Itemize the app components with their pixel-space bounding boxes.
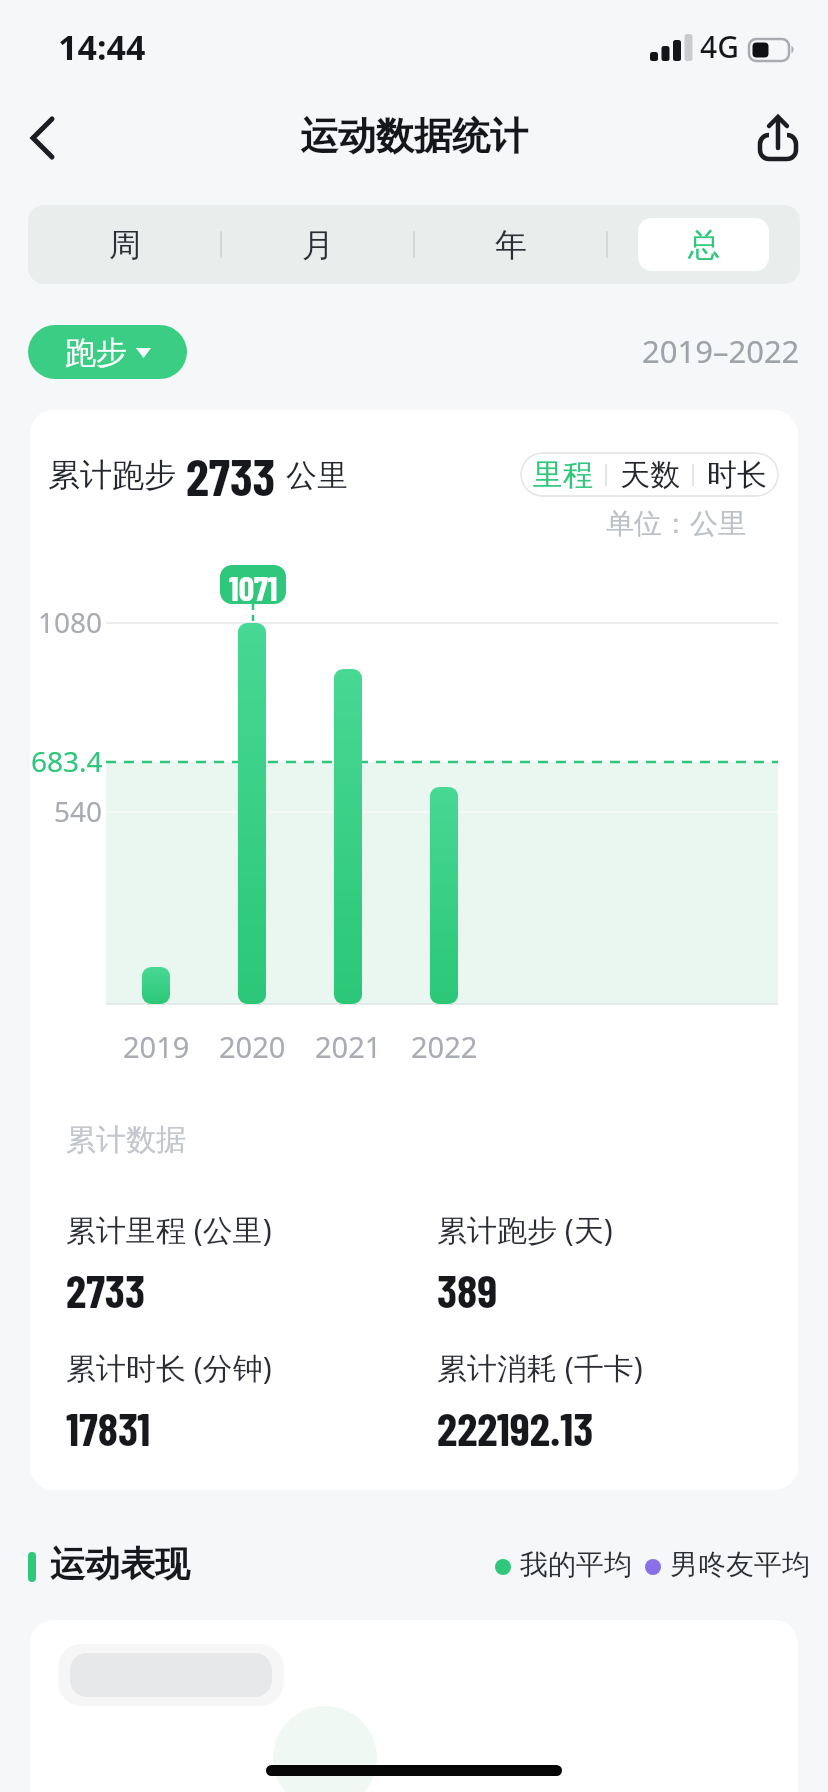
- staticText: 周: [109, 225, 141, 265]
- staticText: 2022: [411, 1027, 478, 1066]
- button[interactable]: 年: [414, 205, 607, 284]
- staticText: 总: [688, 225, 720, 265]
- staticText: 累计消耗 (千卡): [437, 1347, 643, 1388]
- staticText: 2733: [186, 444, 276, 506]
- button[interactable]: [16, 100, 80, 172]
- staticText: 单位：公里: [606, 506, 746, 541]
- button[interactable]: 里程: [520, 452, 605, 497]
- staticText: 累计里程 (公里): [66, 1209, 272, 1250]
- staticText: 389: [437, 1262, 498, 1317]
- button[interactable]: 总: [607, 205, 800, 284]
- staticText: 2733: [66, 1262, 145, 1317]
- staticText: 2021: [315, 1027, 382, 1066]
- staticText: 天数: [620, 456, 680, 494]
- staticText: 2019–2022: [642, 330, 800, 372]
- staticText: 跑步: [65, 333, 127, 372]
- staticText: 年: [495, 225, 527, 265]
- staticText: 4G: [700, 26, 739, 67]
- staticText: 2020: [219, 1027, 286, 1066]
- staticText: 月: [302, 225, 334, 265]
- staticText: 运动数据统计: [0, 112, 828, 160]
- button[interactable]: [744, 96, 816, 172]
- staticText: 14:44: [58, 24, 146, 70]
- staticText: 累计数据: [66, 1121, 186, 1159]
- staticText: 我的平均: [520, 1547, 632, 1582]
- staticText: 时长: [707, 456, 767, 494]
- staticText: 1080: [38, 603, 103, 641]
- staticText: 运动表现: [50, 1542, 190, 1586]
- staticText: 2019: [123, 1027, 190, 1066]
- staticText: 222192.13: [437, 1400, 594, 1455]
- staticText: 累计跑步: [48, 455, 176, 495]
- button[interactable]: 月: [221, 205, 414, 284]
- staticText: 17831: [66, 1400, 151, 1455]
- staticText: 683.4: [31, 742, 103, 780]
- staticText: 540: [54, 792, 103, 830]
- button[interactable]: 周: [28, 205, 221, 284]
- button[interactable]: 时长: [694, 452, 779, 497]
- button[interactable]: 天数: [607, 452, 692, 497]
- staticText: 公里: [286, 456, 348, 495]
- button[interactable]: 跑步: [28, 325, 187, 379]
- staticText: 累计时长 (分钟): [66, 1347, 272, 1388]
- staticText: 男咚友平均: [670, 1547, 810, 1582]
- staticText: 里程: [533, 456, 593, 494]
- staticText: 累计跑步 (天): [437, 1209, 613, 1250]
- staticText: 1071: [229, 567, 278, 603]
